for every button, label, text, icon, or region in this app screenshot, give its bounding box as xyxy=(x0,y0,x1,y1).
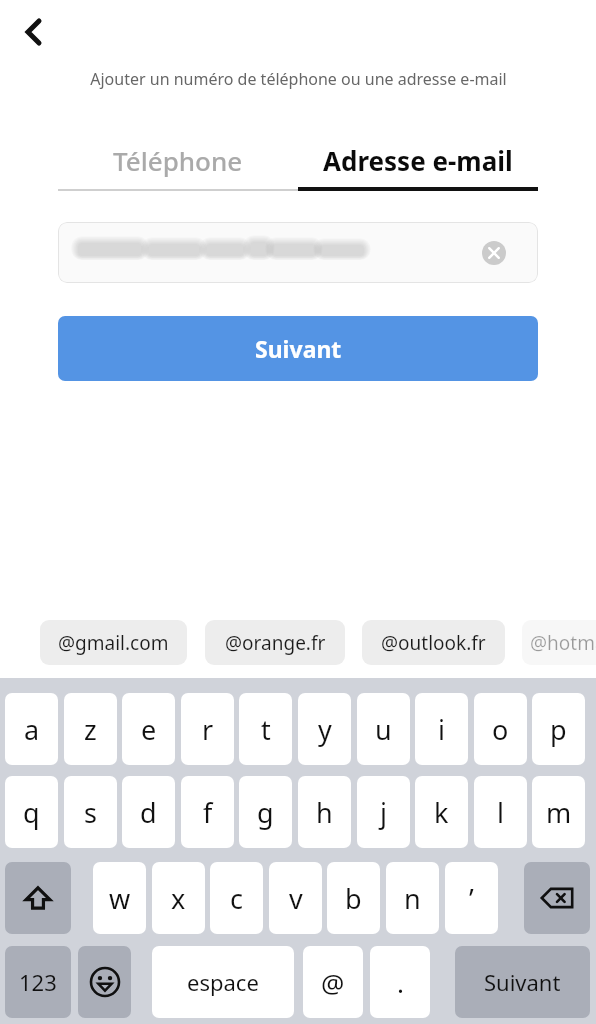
button[interactable]: l xyxy=(474,776,527,848)
staticText: k xyxy=(434,794,449,831)
button[interactable]: u xyxy=(357,693,410,765)
staticText: d xyxy=(140,794,157,831)
staticText: @hotmail.fr xyxy=(530,630,596,656)
staticText: Ajouter un numéro de téléphone ou une ad… xyxy=(90,68,507,90)
button[interactable]: x xyxy=(152,862,205,934)
button[interactable]: @hotmail.fr xyxy=(522,620,596,665)
button[interactable]: Adresse e-mail xyxy=(298,128,538,192)
staticText: espace xyxy=(187,967,259,997)
staticText: j xyxy=(380,794,387,831)
staticText: t xyxy=(261,711,271,748)
staticText: g xyxy=(257,794,274,831)
button[interactable]: z xyxy=(64,693,117,765)
button[interactable]: c xyxy=(210,862,263,934)
staticText: 123 xyxy=(19,967,57,997)
button[interactable]: d xyxy=(122,776,175,848)
staticText: @gmail.com xyxy=(58,630,169,656)
button[interactable]: Backspace xyxy=(524,862,590,934)
button[interactable]: f xyxy=(181,776,234,848)
staticText: @orange.fr xyxy=(225,630,326,656)
staticText: c xyxy=(230,880,243,917)
button[interactable]: a xyxy=(5,693,58,765)
staticText: @outlook.fr xyxy=(381,630,486,656)
button[interactable]: Emoji xyxy=(78,946,131,1018)
staticText: x xyxy=(171,880,186,917)
staticText: l xyxy=(497,794,504,831)
button[interactable]: m xyxy=(532,776,585,848)
staticText: b xyxy=(345,880,362,917)
button[interactable]: @outlook.fr xyxy=(362,620,505,665)
button[interactable]: o xyxy=(474,693,527,765)
staticText: u xyxy=(375,711,392,748)
button[interactable]: t xyxy=(239,693,292,765)
staticText: a xyxy=(24,711,40,748)
staticText: y xyxy=(318,711,332,748)
button[interactable]: n xyxy=(386,862,439,934)
button[interactable]: Shift xyxy=(5,862,71,934)
button[interactable]: j xyxy=(357,776,410,848)
staticText: Adresse e-mail xyxy=(323,143,513,178)
staticText: @ xyxy=(321,965,345,1000)
staticText: w xyxy=(109,880,131,917)
button[interactable]: Suivant xyxy=(58,316,538,381)
staticText: r xyxy=(202,711,214,748)
staticText: f xyxy=(203,794,213,831)
staticText: h xyxy=(316,794,333,831)
button[interactable]: @ xyxy=(303,946,363,1018)
staticText: Téléphone xyxy=(113,143,243,178)
button[interactable]: s xyxy=(64,776,117,848)
button[interactable]: r xyxy=(181,693,234,765)
button[interactable]: Suivant xyxy=(455,946,590,1018)
staticText: Suivant xyxy=(255,333,342,364)
button[interactable]: q xyxy=(5,776,58,848)
staticText: q xyxy=(23,794,40,831)
staticText: i xyxy=(438,711,445,748)
staticText: . xyxy=(397,965,404,1000)
staticText: s xyxy=(84,794,97,831)
button[interactable]: @gmail.com xyxy=(40,620,187,665)
button[interactable]: e xyxy=(122,693,175,765)
staticText: Suivant xyxy=(484,967,561,997)
button[interactable]: espace xyxy=(152,946,294,1018)
staticText: m xyxy=(546,794,572,831)
button[interactable]: v xyxy=(269,862,322,934)
button[interactable]: ’ xyxy=(445,862,498,934)
button[interactable]: p xyxy=(532,693,585,765)
button[interactable]: k xyxy=(415,776,468,848)
button[interactable]: @orange.fr xyxy=(205,620,345,665)
button[interactable]: Clear text xyxy=(477,236,511,270)
staticText: n xyxy=(404,880,421,917)
button[interactable]: b xyxy=(327,862,380,934)
button[interactable]: w xyxy=(93,862,146,934)
button[interactable]: i xyxy=(415,693,468,765)
button[interactable]: y xyxy=(298,693,351,765)
button[interactable]: 123 xyxy=(5,946,71,1018)
staticText: e xyxy=(141,711,157,748)
button[interactable]: Clear text xyxy=(58,222,538,283)
button[interactable]: Back xyxy=(10,8,58,56)
staticText: o xyxy=(492,711,509,748)
staticText: v xyxy=(289,880,303,917)
staticText: ’ xyxy=(469,880,474,917)
button[interactable]: . xyxy=(370,946,430,1018)
staticText: z xyxy=(84,711,97,748)
button[interactable]: g xyxy=(239,776,292,848)
button[interactable]: Téléphone xyxy=(58,128,298,192)
staticText: p xyxy=(550,711,567,748)
button[interactable]: h xyxy=(298,776,351,848)
